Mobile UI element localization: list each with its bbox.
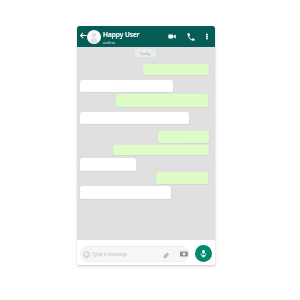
button[interactable]: Today (135, 49, 156, 57)
button[interactable]: Call (186, 32, 195, 41)
staticText: online (103, 40, 116, 46)
staticText: Today (140, 51, 151, 56)
button[interactable]: Contact photo (87, 30, 101, 44)
button[interactable]: Attach (162, 251, 169, 258)
button[interactable]: Video call (168, 32, 177, 41)
button[interactable]: More options (202, 32, 211, 41)
button[interactable]: Record voice message (195, 245, 212, 262)
button[interactable]: Camera (180, 250, 188, 258)
staticText: Type a message (92, 251, 128, 257)
button[interactable]: Type a message (80, 246, 189, 262)
staticText: Happy User (103, 30, 140, 39)
button[interactable]: Back (80, 32, 87, 39)
